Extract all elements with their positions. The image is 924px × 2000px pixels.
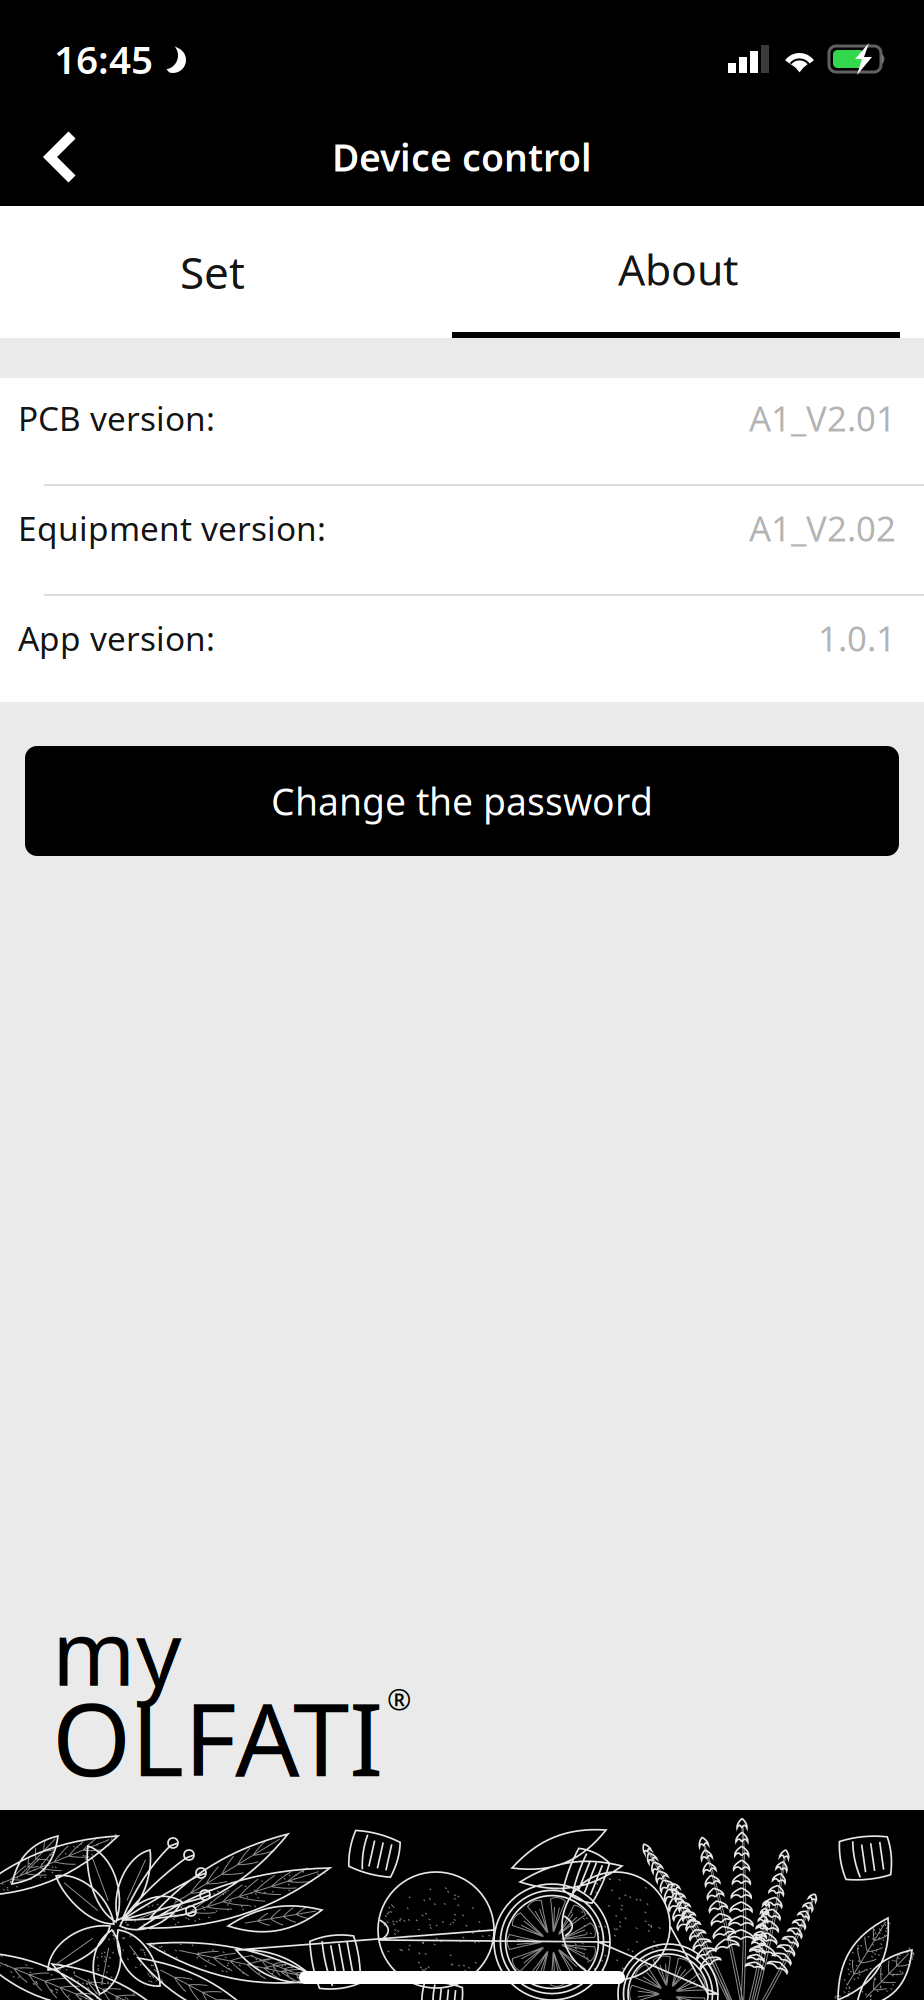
staticText: App version:: [18, 616, 215, 660]
button[interactable]: About: [452, 206, 924, 338]
staticText: OLFATI: [52, 1670, 383, 1804]
staticText: 1.0.1: [818, 615, 896, 661]
staticText: A1_V2.02: [749, 505, 896, 551]
staticText: ®: [387, 1680, 411, 1719]
staticText: PCB version:: [18, 396, 215, 440]
staticText: 16:45: [54, 33, 153, 85]
button[interactable]: Change the password: [25, 746, 899, 856]
staticText: About: [618, 241, 738, 297]
staticText: my: [52, 1592, 182, 1710]
staticText: Change the password: [271, 776, 653, 826]
button[interactable]: Back: [20, 108, 112, 206]
staticText: Device control: [332, 132, 592, 182]
staticText: A1_V2.01: [749, 395, 896, 441]
staticText: Set: [180, 243, 245, 301]
staticText: Equipment version:: [18, 506, 326, 550]
button[interactable]: Set: [0, 206, 425, 338]
